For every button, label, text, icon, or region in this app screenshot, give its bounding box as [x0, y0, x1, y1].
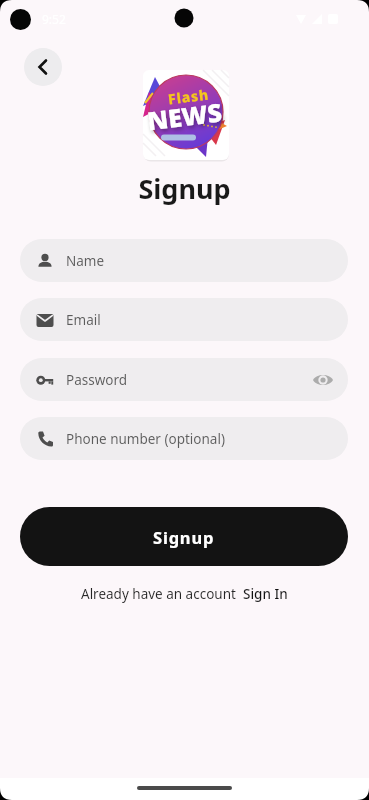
staticText: Signup	[153, 526, 215, 548]
button[interactable]: Signup	[20, 507, 348, 566]
staticText: Password	[66, 371, 128, 389]
staticText: Already have an account	[81, 585, 243, 603]
staticText: NEWS	[145, 95, 224, 137]
button[interactable]	[312, 369, 334, 391]
staticText: Signup	[0, 170, 369, 207]
button[interactable]: Phone number (optional)	[20, 417, 348, 460]
staticText: Email	[66, 311, 101, 329]
button[interactable]: Password	[20, 358, 348, 401]
button[interactable]: Email	[20, 298, 348, 341]
staticText: Name	[66, 252, 105, 270]
staticText: Phone number (optional)	[66, 430, 225, 448]
button[interactable]	[24, 48, 62, 86]
staticText: Flash	[167, 85, 210, 108]
button[interactable]: Sign In	[243, 585, 288, 603]
button[interactable]: Name	[20, 239, 348, 282]
